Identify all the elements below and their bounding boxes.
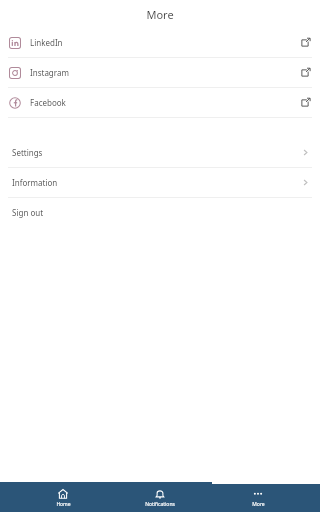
button[interactable]: More: [223, 482, 293, 512]
staticText: More: [252, 501, 265, 508]
button[interactable]: LinkedIn: [0, 28, 320, 57]
button[interactable]: Home: [28, 482, 98, 512]
staticText: Sign out: [12, 207, 44, 218]
staticText: Information: [12, 177, 58, 188]
staticText: Settings: [12, 147, 43, 158]
staticText: Home: [56, 501, 71, 508]
staticText: Notifications: [145, 501, 175, 508]
staticText: Facebook: [30, 97, 66, 108]
button[interactable]: Settings: [0, 138, 320, 167]
staticText: Instagram: [30, 67, 69, 78]
button[interactable]: Facebook: [0, 88, 320, 117]
button[interactable]: Notifications: [125, 482, 195, 512]
button[interactable]: Sign out: [0, 198, 320, 227]
button[interactable]: Instagram: [0, 58, 320, 87]
button[interactable]: Information: [0, 168, 320, 197]
staticText: More: [146, 7, 174, 22]
staticText: LinkedIn: [30, 37, 63, 48]
